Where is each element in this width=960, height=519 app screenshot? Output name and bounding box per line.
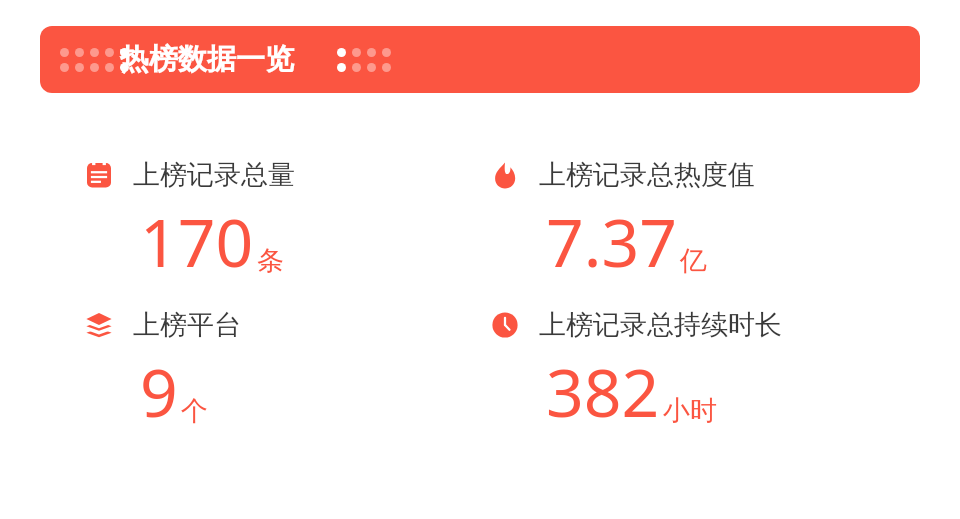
button[interactable]: Duration xyxy=(490,308,960,436)
other: Records xyxy=(84,160,114,190)
other: Heat xyxy=(490,160,520,190)
button[interactable]: 热榜数据一览 xyxy=(40,26,920,93)
staticText: 个 xyxy=(181,394,208,428)
button[interactable]: Heat xyxy=(490,158,960,286)
staticText: 上榜记录总持续时长 xyxy=(539,308,782,342)
button[interactable]: Platforms xyxy=(84,308,480,436)
staticText: 170 xyxy=(140,196,254,286)
other: Platforms xyxy=(84,310,114,340)
button[interactable]: Records xyxy=(84,158,480,286)
staticText: 9 xyxy=(140,346,178,436)
other: Duration xyxy=(490,310,520,340)
staticText: 小时 xyxy=(663,394,717,428)
staticText: 7.37 xyxy=(546,196,677,286)
staticText: 上榜平台 xyxy=(133,308,241,342)
staticText: 条 xyxy=(257,244,284,278)
staticText: 上榜记录总量 xyxy=(133,158,295,192)
staticText: 亿 xyxy=(680,244,707,278)
staticText: 上榜记录总热度值 xyxy=(539,158,755,192)
staticText: 382 xyxy=(546,346,660,436)
staticText: 热榜数据一览 xyxy=(120,41,294,78)
